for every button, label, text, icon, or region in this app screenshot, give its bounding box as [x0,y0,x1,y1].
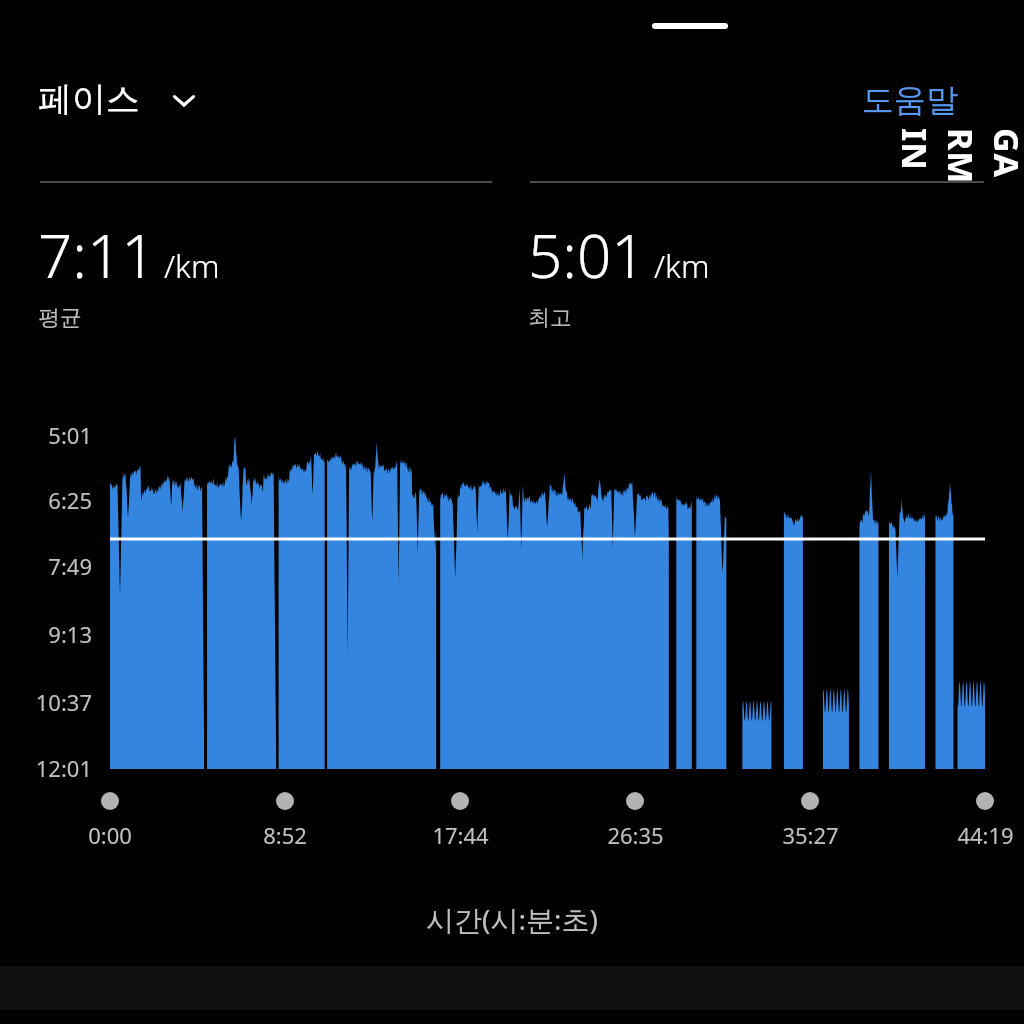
staticText: 5:01 [48,420,92,450]
staticText: 0:00 [88,820,132,850]
staticText: 8:52 [263,820,307,850]
staticText: 최고 [528,304,572,332]
other: Change metric [170,86,198,114]
staticText: 7:11 [38,214,156,296]
staticText: 6:25 [48,485,92,515]
staticText: 9:13 [48,619,92,649]
staticText: 7:49 [48,551,92,581]
button[interactable]: 페이스 [38,78,206,121]
staticText: 26:35 [607,820,664,850]
staticText: 10:37 [35,687,92,717]
staticText: 도움말 [862,80,958,120]
staticText: /km [164,244,220,288]
staticText: 35:27 [782,820,839,850]
staticText: 12:01 [35,753,92,783]
staticText: GARMIN [892,128,1024,194]
staticText: 페이스 [38,78,140,121]
staticText: 44:19 [957,820,1014,850]
staticText: 평균 [38,304,82,332]
staticText: 시간(시:분:초) [426,900,598,938]
staticText: 17:44 [432,820,489,850]
button[interactable]: 도움말 [862,80,958,120]
staticText: 5:01 [528,214,646,296]
staticText: /km [654,244,710,288]
